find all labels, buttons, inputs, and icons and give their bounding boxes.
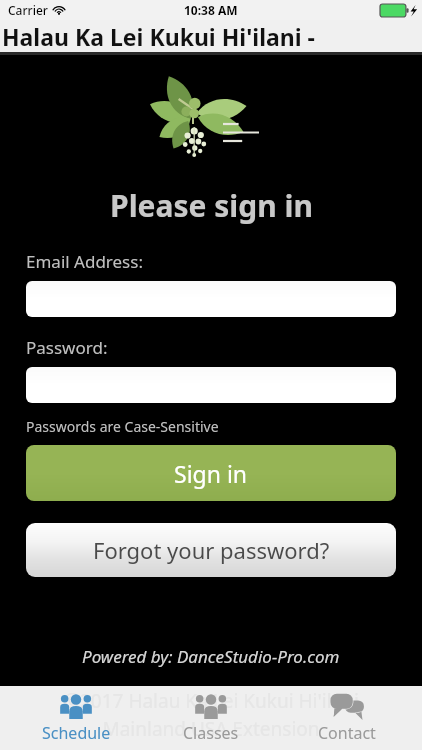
staticText: Password:: [26, 336, 108, 359]
button[interactable]: Schedule: [16, 686, 136, 750]
staticText: Schedule: [42, 722, 111, 744]
button[interactable]: [26, 281, 396, 317]
staticText: Carrier: [8, 2, 48, 18]
staticText: Contact: [318, 722, 376, 744]
staticText: Powered by: DanceStudio-Pro.com: [82, 645, 340, 668]
staticText: 10:38 AM: [184, 2, 238, 18]
staticText: Halau Ka Lei Kukui Hi'ilani - Mainland U…: [2, 21, 422, 52]
staticText: Classes: [183, 722, 239, 744]
staticText: Please sign in: [110, 185, 313, 226]
button[interactable]: Classes: [151, 686, 271, 750]
button[interactable]: Forgot your password?: [26, 523, 396, 577]
button[interactable]: [26, 367, 396, 403]
staticText: Passwords are Case-Sensitive: [26, 417, 219, 436]
staticText: Mainland USA Extension: [102, 716, 320, 742]
staticText: ©2017 Halau Ka Lei Kukui Hi'ilani: [64, 688, 359, 714]
staticText: Sign in: [174, 458, 248, 489]
staticText: Email Address:: [26, 250, 143, 273]
button[interactable]: Sign in: [26, 445, 396, 501]
staticText: Forgot your password?: [93, 535, 330, 565]
button[interactable]: Contact: [287, 686, 407, 750]
